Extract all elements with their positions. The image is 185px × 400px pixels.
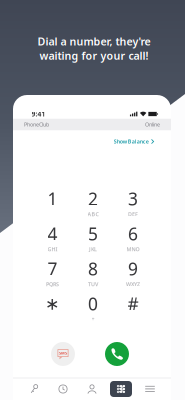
button[interactable]: Top up: [19, 378, 48, 400]
button[interactable]: 8: [76, 259, 110, 287]
staticText: Online: [145, 121, 160, 128]
staticText: TUV: [88, 281, 98, 288]
button[interactable]: Send SMS: [50, 341, 76, 367]
staticText: 9:41: [31, 110, 45, 118]
staticText: #: [127, 292, 138, 315]
staticText: 1: [47, 187, 57, 210]
button[interactable]: Keypad: [106, 378, 135, 400]
staticText: PQRS: [46, 281, 59, 288]
button[interactable]: 1: [35, 189, 69, 217]
button[interactable]: 9: [116, 259, 150, 287]
staticText: DEF: [128, 211, 138, 218]
staticText: JKL: [89, 246, 97, 253]
staticText: 7: [47, 257, 57, 280]
staticText: WXYZ: [126, 281, 140, 288]
button[interactable]: Contacts: [77, 378, 106, 400]
button[interactable]: 7: [35, 259, 69, 287]
staticText: 8: [88, 257, 98, 280]
staticText: ∗: [45, 294, 60, 314]
staticText: waiting for your call!: [39, 48, 148, 63]
staticText: 9: [128, 257, 138, 280]
staticText: 2: [88, 187, 98, 210]
staticText: PhoneClub: [24, 121, 49, 128]
staticText: GHI: [47, 246, 57, 253]
button[interactable]: 4: [35, 224, 69, 252]
button[interactable]: Recents: [48, 378, 77, 400]
staticText: Dial a number, they're: [37, 34, 150, 48]
button[interactable]: 3: [116, 189, 150, 217]
button[interactable]: ∗: [35, 294, 69, 322]
staticText: 4: [47, 222, 57, 245]
button[interactable]: 2: [76, 189, 110, 217]
button[interactable]: 6: [116, 224, 150, 252]
button[interactable]: 0: [76, 294, 110, 322]
button[interactable]: #: [116, 294, 150, 322]
button[interactable]: 5: [76, 224, 110, 252]
staticText: MNO: [126, 246, 139, 253]
staticText: +: [91, 316, 94, 323]
button[interactable]: Call: [104, 341, 130, 367]
staticText: 3: [128, 187, 138, 210]
staticText: 0: [88, 292, 98, 315]
button[interactable]: Show Balance: [109, 134, 159, 149]
button[interactable]: More: [135, 378, 164, 400]
staticText: ABC: [87, 211, 98, 218]
staticText: Show Balance: [114, 138, 149, 145]
staticText: 5: [88, 222, 98, 245]
staticText: SMS: [59, 350, 67, 356]
staticText: 6: [128, 222, 138, 245]
